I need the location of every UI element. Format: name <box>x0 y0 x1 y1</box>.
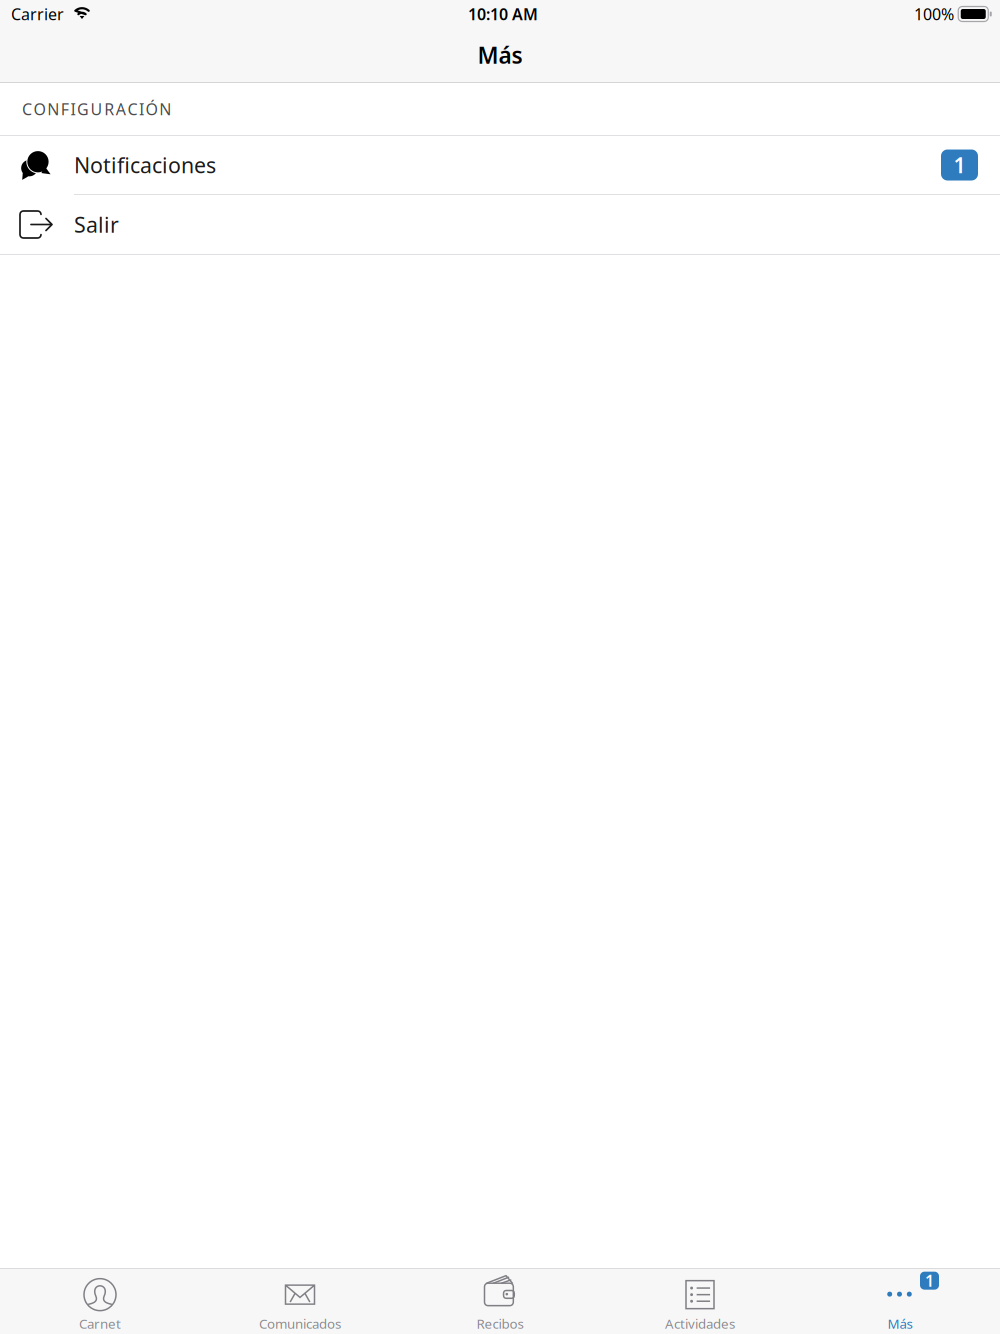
button[interactable]: Notificaciones <box>0 136 1000 194</box>
button[interactable]: Actividades <box>600 1269 800 1334</box>
staticText: Notificaciones <box>74 151 216 179</box>
button[interactable]: Carnet <box>0 1269 200 1334</box>
button[interactable]: 1 <box>800 1269 1000 1334</box>
button[interactable]: Recibos <box>400 1269 600 1334</box>
button[interactable]: Salir <box>0 195 1000 254</box>
staticText: 1 <box>953 151 965 179</box>
staticText: Carrier <box>11 3 64 25</box>
staticText: Carnet <box>79 1315 121 1332</box>
button[interactable]: Comunicados <box>200 1269 400 1334</box>
staticText: 10:10 AM <box>468 3 538 25</box>
staticText: Comunicados <box>259 1315 341 1332</box>
staticText: 100% <box>914 3 954 25</box>
staticText: Más <box>477 40 522 70</box>
staticText: Actividades <box>665 1315 735 1332</box>
staticText: Más <box>887 1315 912 1332</box>
staticText: Salir <box>74 210 119 239</box>
staticText: CONFIGURACIÓN <box>22 98 171 120</box>
staticText: Recibos <box>476 1315 523 1332</box>
staticText: 1 <box>925 1270 934 1291</box>
